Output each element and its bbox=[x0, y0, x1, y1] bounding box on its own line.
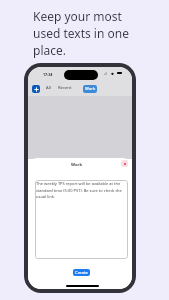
staticText: Keep your most used texts in one place. bbox=[33, 8, 130, 59]
button[interactable]: Add bbox=[32, 85, 40, 93]
button[interactable]: Create bbox=[73, 269, 90, 276]
staticText: Recent bbox=[58, 85, 72, 91]
button[interactable]: Work bbox=[83, 85, 97, 93]
staticText: All bbox=[46, 85, 51, 91]
staticText: 17:34 bbox=[43, 72, 53, 77]
button[interactable]: Recent bbox=[58, 85, 72, 91]
staticText: Work bbox=[85, 86, 96, 92]
staticText: Work bbox=[71, 162, 83, 168]
staticText: Create bbox=[75, 270, 88, 276]
button[interactable]: Close bbox=[121, 160, 128, 167]
button[interactable]: All bbox=[46, 85, 51, 91]
staticText: The weekly TPS report will be available … bbox=[36, 181, 127, 199]
